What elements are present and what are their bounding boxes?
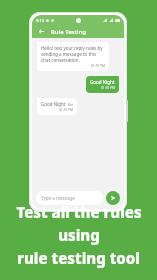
staticText: Bot [68, 103, 73, 107]
staticText: 01:15 PM [91, 64, 105, 68]
staticText: Good Night [41, 101, 66, 107]
staticText: 9:13 [36, 18, 44, 23]
staticText: Hello! test your reply rules by sending … [41, 45, 105, 63]
staticText: Test all the rules [16, 202, 142, 222]
button[interactable]: Send [106, 191, 120, 205]
button[interactable]: Hello! test your reply rules by sending … [37, 42, 109, 71]
staticText: using [58, 225, 100, 245]
button[interactable]: Back [37, 27, 46, 36]
staticText: rule testing tool [17, 248, 140, 268]
button[interactable]: Good Night [86, 76, 119, 93]
staticText: Rule Testing [51, 28, 86, 36]
staticText: Type a message [41, 195, 75, 201]
staticText: 01:15 PM [59, 108, 73, 112]
button[interactable]: Good Night [37, 98, 77, 115]
staticText: 01:15 PM [101, 86, 115, 90]
staticText: Good Night [90, 79, 115, 85]
button[interactable]: Type a message [36, 191, 103, 205]
